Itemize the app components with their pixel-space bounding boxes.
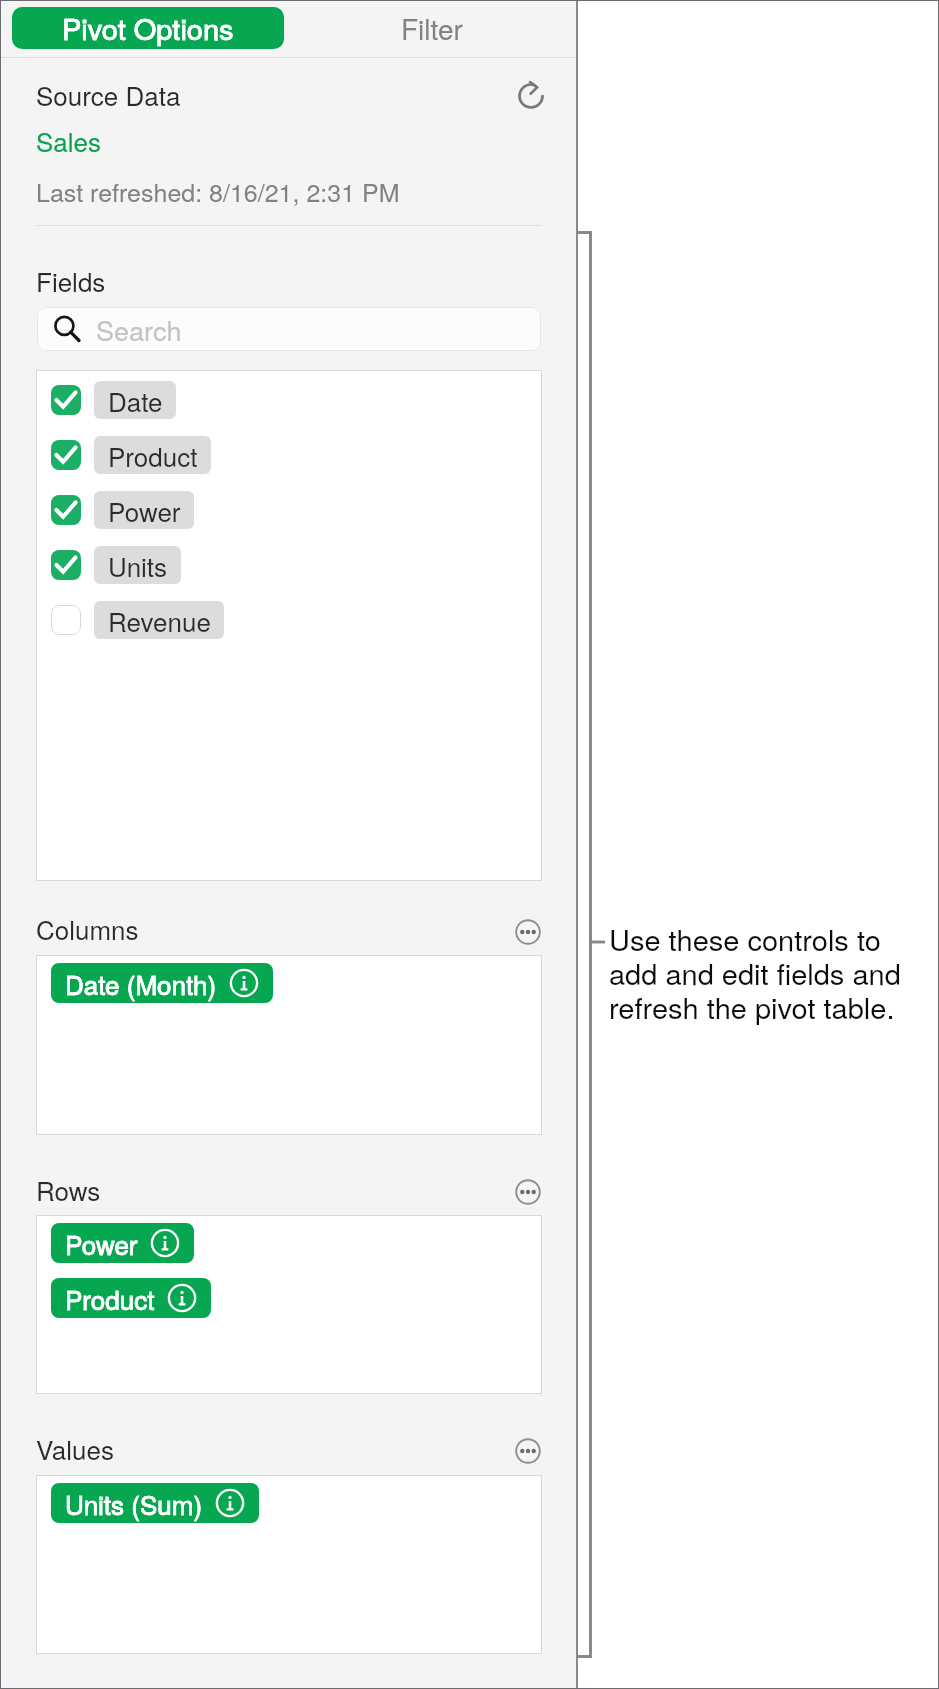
button[interactable]: Pivot Options	[12, 7, 284, 49]
button[interactable]: Date (Month)	[51, 963, 273, 1003]
staticText: Product	[65, 1280, 155, 1317]
staticText: Fields	[36, 262, 106, 299]
staticText: Date	[108, 382, 163, 419]
button[interactable]: Units	[51, 537, 181, 592]
staticText: Date (Month)	[65, 965, 217, 1002]
staticText: Units (Sum)	[65, 1485, 203, 1522]
staticText: Pivot Options	[62, 7, 234, 49]
button[interactable]: Date	[51, 372, 176, 427]
button[interactable]: Product	[51, 427, 211, 482]
staticText: Rows	[36, 1171, 101, 1208]
button[interactable]: Rows options	[514, 1178, 542, 1206]
staticText: Product	[108, 437, 198, 474]
button[interactable]: Units (Sum)	[51, 1483, 259, 1523]
staticText: Search	[96, 310, 182, 349]
staticText: Columns	[36, 910, 139, 947]
button[interactable]: Refresh	[515, 80, 547, 112]
staticText: Units (Sum)	[65, 1485, 203, 1522]
button[interactable]: Power	[51, 1223, 194, 1263]
staticText: refresh the pivot table.	[609, 986, 895, 1028]
staticText: Values	[36, 1430, 114, 1467]
button[interactable]: Power	[51, 482, 194, 537]
button[interactable]: Filter	[296, 7, 568, 49]
staticText: Product	[65, 1280, 155, 1317]
button[interactable]: Revenue	[51, 592, 224, 647]
button[interactable]: Search	[37, 307, 541, 351]
staticText: Revenue	[108, 602, 211, 639]
staticText: Units	[108, 547, 168, 584]
staticText: add and edit fields and	[609, 952, 901, 994]
staticText: Sales	[36, 122, 102, 159]
staticText: Filter	[401, 8, 463, 48]
button[interactable]: Values options	[514, 1437, 542, 1465]
staticText: Power	[65, 1225, 138, 1262]
staticText: Power	[65, 1225, 138, 1262]
staticText: Use these controls to	[609, 918, 881, 960]
button[interactable]: Columns options	[514, 918, 542, 946]
button[interactable]: Product	[51, 1278, 211, 1318]
staticText: Date (Month)	[65, 965, 217, 1002]
staticText: Pivot Options	[62, 7, 234, 49]
staticText: Power	[108, 492, 181, 529]
staticText: Last refreshed: 8/16/21, 2:31 PM	[36, 173, 400, 209]
staticText: Source Data	[36, 76, 181, 113]
